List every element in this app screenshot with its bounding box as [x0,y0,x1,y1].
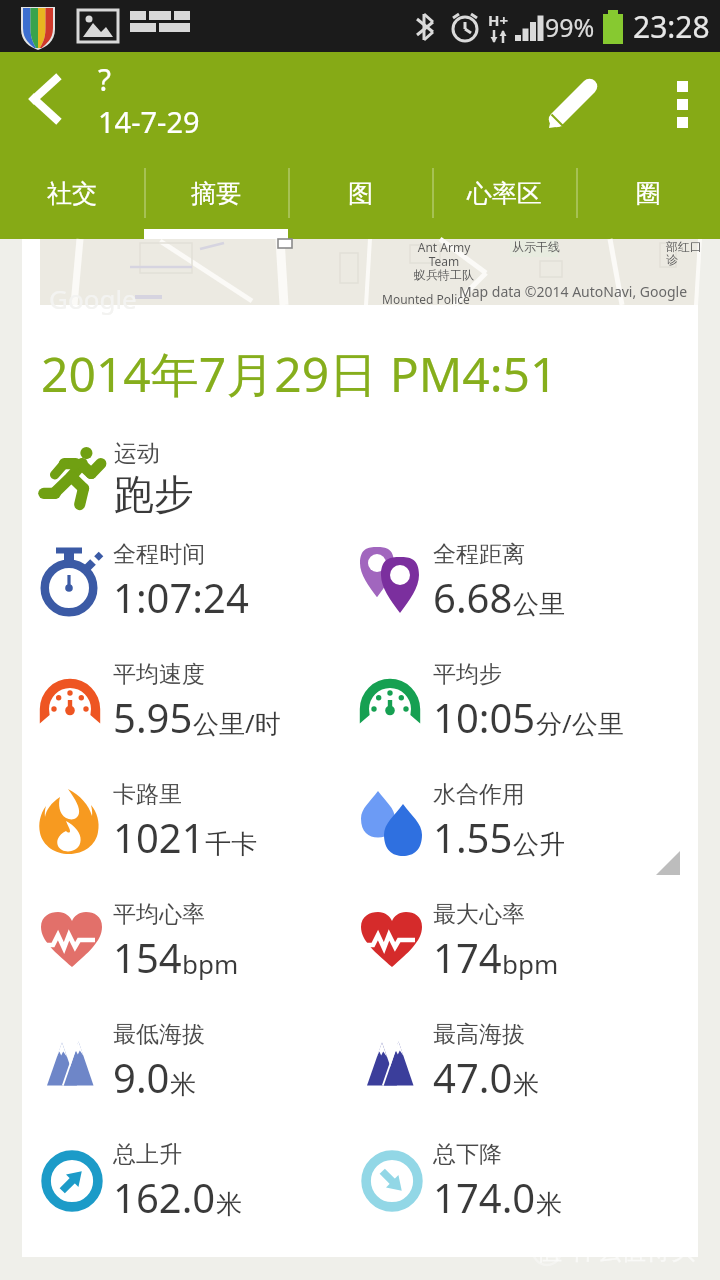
staticText: 卡路里 [113,780,182,809]
staticText: Google [49,281,137,316]
staticText: 1021 [113,810,205,864]
staticText: 162.0 [113,1170,216,1224]
staticText: 最大心率 [433,900,525,929]
button[interactable]: 总下降 [342,1127,698,1247]
staticText: 1.55 [433,810,513,864]
staticText: bpm [502,946,559,981]
button[interactable]: 最大心率 [342,887,698,1007]
button[interactable]: Edit [528,52,620,156]
staticText: 174.0 [433,1170,536,1224]
staticText: 总上升 [113,1140,182,1169]
staticText: 公里/时 [193,705,281,741]
staticText: 图 [348,178,373,209]
staticText: 全程时间 [113,540,205,569]
button[interactable]: 摘要 [144,156,288,239]
staticText: 10:05 [433,690,536,744]
button[interactable]: Back [0,52,96,156]
button[interactable]: 总上升 [22,1127,342,1247]
staticText: 174 [433,930,502,984]
staticText: Ant Army Team 蚁兵特工队 [414,239,474,283]
button[interactable]: More options [644,52,720,156]
staticText: 跑步 [114,469,194,519]
staticText: 值 [536,1234,562,1267]
staticText: 2014年7月29日 PM4:51 [41,341,558,407]
staticText: 部红口 诊 [666,239,702,268]
staticText: 圈 [636,178,661,209]
staticText: 心率区 [467,178,542,209]
staticText: 6.68 [433,570,513,624]
staticText: 社交 [47,178,97,209]
button[interactable]: 平均步 [342,647,698,767]
staticText: 47.0 [433,1050,513,1104]
staticText: 米 [513,1068,539,1101]
staticText: 总下降 [433,1140,502,1169]
staticText: ? [98,59,112,100]
button[interactable]: 平均速度 [22,647,342,767]
staticText: 5.95 [113,690,193,744]
staticText: H+ [488,10,509,30]
button[interactable]: 全程距离 [342,527,698,647]
button[interactable]: 水合作用 [342,767,698,887]
button[interactable]: 社交 [0,156,144,239]
staticText: 公里 [513,588,565,621]
staticText: 平均心率 [113,900,205,929]
staticText: 千卡 [205,828,257,861]
button[interactable]: 卡路里 [22,767,342,887]
staticText: 最低海拔 [113,1020,205,1049]
button[interactable]: 平均心率 [22,887,342,1007]
staticText: 平均步 [433,660,502,689]
staticText: 全程距离 [433,540,525,569]
staticText: 1:07:24 [113,570,249,624]
staticText: 从示干线 [512,239,560,254]
button[interactable]: 最低海拔 [22,1007,342,1127]
staticText: 9.0 [113,1050,170,1104]
staticText: Mounted Police [382,291,470,307]
staticText: 平均速度 [113,660,205,689]
staticText: 水合作用 [433,780,525,809]
staticText: 米 [536,1188,562,1221]
staticText: 23:28 [633,6,710,47]
button[interactable]: 心率区 [432,156,576,239]
staticText: 分/公里 [536,705,624,741]
staticText: Map data ©2014 AutoNavi, Google [459,282,688,301]
staticText: 154 [113,930,182,984]
staticText: 运动 [114,439,160,468]
staticText: 公升 [513,828,565,861]
staticText: 米 [216,1188,242,1221]
staticText: 99% [545,10,595,44]
button[interactable]: 圈 [576,156,720,239]
staticText: 米 [170,1068,196,1101]
button[interactable]: 全程时间 [22,527,342,647]
staticText: 14-7-29 [98,102,200,141]
staticText: 什么值得买 [571,1235,696,1266]
button[interactable]: 图 [288,156,432,239]
staticText: bpm [182,946,239,981]
button[interactable]: 最高海拔 [342,1007,698,1127]
staticText: 摘要 [191,178,241,209]
staticText: 最高海拔 [433,1020,525,1049]
